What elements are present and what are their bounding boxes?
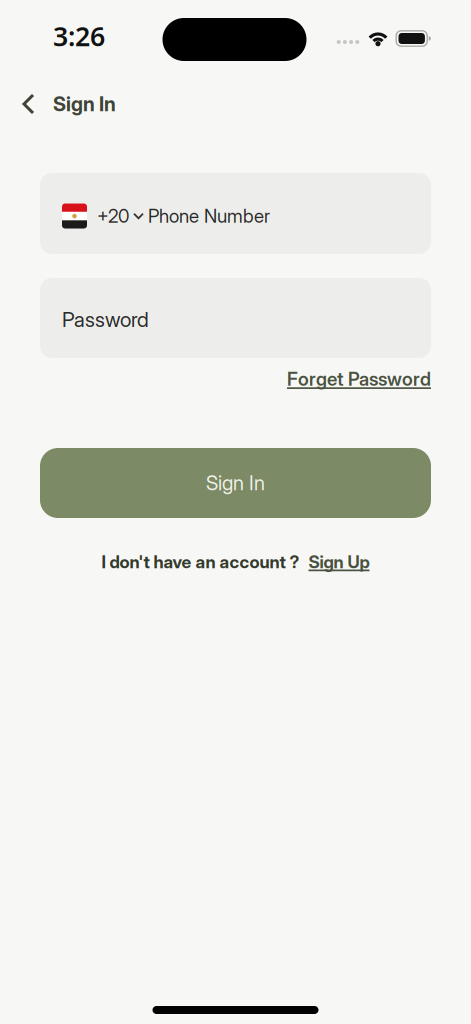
button[interactable]: Password — [40, 278, 431, 358]
button[interactable]: Sign In — [40, 448, 431, 518]
staticText: Sign Up — [308, 551, 369, 572]
staticText: Forget Password — [287, 368, 431, 390]
button[interactable]: Phone Number — [40, 173, 431, 254]
staticText: Password — [62, 307, 149, 332]
staticText: Phone Number — [148, 205, 270, 227]
staticText: +20 — [97, 205, 129, 227]
button[interactable]: Forget Password — [287, 368, 431, 390]
staticText: Sign In — [206, 471, 265, 495]
staticText: I don't have an account ? — [101, 551, 299, 572]
staticText: 3:26 — [53, 18, 105, 54]
button[interactable]: Sign Up — [308, 551, 369, 572]
button[interactable]: Back — [13, 87, 43, 121]
staticText: Sign In — [53, 92, 116, 116]
